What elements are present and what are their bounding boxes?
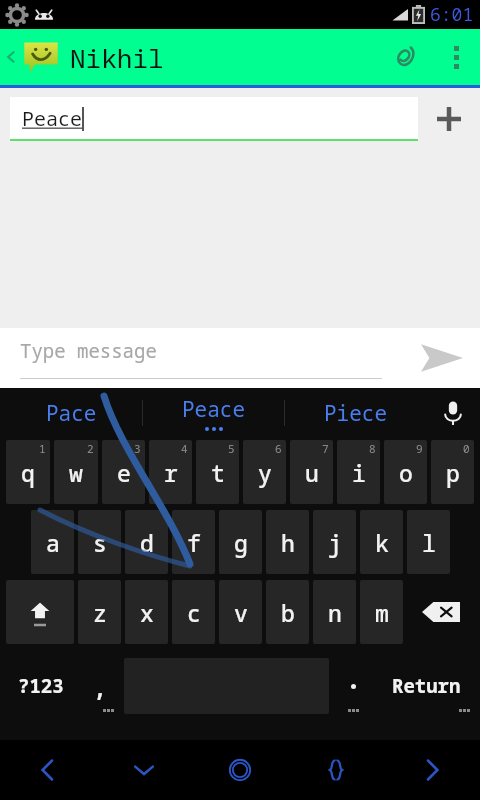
staticText: Peace [22, 105, 82, 132]
button[interactable] [331, 650, 376, 722]
button[interactable]: b [266, 580, 309, 644]
staticText: Type message [20, 338, 157, 364]
button[interactable]: Backspace [407, 580, 474, 644]
button[interactable]: q [6, 440, 50, 504]
staticText: c [187, 597, 201, 628]
staticText: 3 [134, 441, 141, 456]
button[interactable]: c [172, 580, 215, 644]
staticText: 4 [181, 441, 188, 456]
button[interactable]: i [337, 440, 380, 504]
button[interactable]: m [360, 580, 403, 644]
staticText: q [21, 457, 35, 488]
staticText: a [46, 527, 60, 558]
button[interactable]: h [266, 510, 309, 574]
staticText: j [328, 527, 342, 558]
button[interactable]: , [77, 650, 122, 722]
staticText: 6:01 [430, 2, 474, 27]
staticText: s [93, 527, 107, 558]
staticText: k [375, 527, 389, 558]
staticText: h [281, 527, 295, 558]
button[interactable]: More options [432, 33, 480, 81]
staticText: o [399, 457, 413, 488]
staticText: 0 [463, 441, 470, 456]
button[interactable]: a [31, 510, 74, 574]
button[interactable]: v [219, 580, 262, 644]
button[interactable]: d [125, 510, 168, 574]
button[interactable]: Shift [6, 580, 74, 644]
button[interactable]: p [431, 440, 474, 504]
button[interactable]: Home [192, 740, 288, 800]
staticText: Piece [324, 399, 387, 428]
button[interactable]: z [78, 580, 121, 644]
staticText: v [234, 597, 248, 628]
staticText: f [187, 527, 201, 558]
button[interactable]: Peace [142, 388, 284, 438]
button[interactable]: x [125, 580, 168, 644]
staticText: y [258, 457, 272, 488]
staticText: t [211, 457, 225, 488]
button[interactable]: t [196, 440, 239, 504]
button[interactable]: e [102, 440, 145, 504]
staticText: m [375, 597, 389, 628]
button[interactable]: g [219, 510, 262, 574]
button[interactable]: Hide keyboard [96, 740, 192, 800]
staticText: p [446, 457, 460, 488]
button[interactable]: Voice input [426, 388, 480, 438]
button[interactable]: j [313, 510, 356, 574]
button[interactable]: Add [418, 88, 480, 150]
button[interactable]: Back [0, 29, 22, 85]
staticText: 2 [87, 441, 94, 456]
button[interactable]: w [54, 440, 98, 504]
staticText: b [281, 597, 295, 628]
button[interactable]: l [407, 510, 450, 574]
button[interactable]: Back [0, 740, 96, 800]
staticText: u [305, 457, 319, 488]
button[interactable]: n [313, 580, 356, 644]
staticText: x [140, 597, 154, 628]
staticText: e [117, 457, 131, 488]
button[interactable]: y [243, 440, 286, 504]
button[interactable]: Attach [376, 29, 432, 85]
button[interactable]: u [290, 440, 333, 504]
staticText: g [234, 527, 248, 558]
staticText: 7 [322, 441, 329, 456]
staticText: Return [392, 673, 461, 699]
button[interactable]: Piece [284, 388, 426, 438]
button[interactable]: Pace [0, 388, 142, 438]
button[interactable]: k [360, 510, 403, 574]
button[interactable]: Menu [288, 740, 384, 800]
staticText: Nikhil [70, 40, 164, 75]
staticText: 5 [228, 441, 235, 456]
staticText: , [93, 671, 107, 702]
staticText: 1 [39, 441, 46, 456]
button[interactable]: o [384, 440, 427, 504]
staticText: Pace [46, 399, 97, 428]
staticText: d [140, 527, 154, 558]
staticText: z [93, 597, 107, 628]
staticText: w [69, 457, 83, 488]
button[interactable]: Return [376, 650, 476, 722]
staticText: 8 [369, 441, 376, 456]
button[interactable]: s [78, 510, 121, 574]
staticText: r [164, 457, 178, 488]
button[interactable]: f [172, 510, 215, 574]
staticText: n [328, 597, 342, 628]
staticText: Peace [182, 395, 245, 424]
button[interactable]: Send [404, 328, 480, 388]
staticText: 9 [416, 441, 423, 456]
button[interactable]: ?123 [4, 650, 77, 722]
staticText: l [422, 527, 436, 558]
staticText: 6 [275, 441, 282, 456]
button[interactable]: Forward [384, 740, 480, 800]
button[interactable]: r [149, 440, 192, 504]
staticText: ?123 [18, 673, 64, 699]
staticText: i [352, 457, 366, 488]
